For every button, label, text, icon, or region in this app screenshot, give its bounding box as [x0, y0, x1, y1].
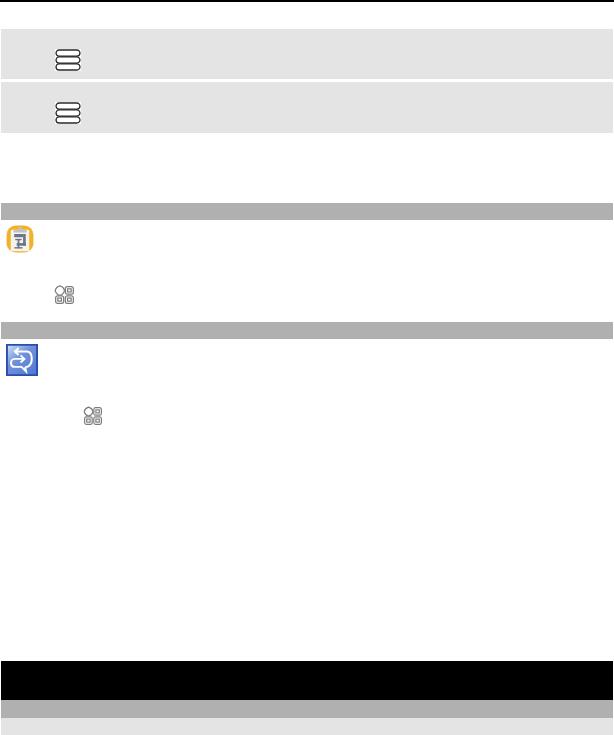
button[interactable]: Drag to reorder	[1, 82, 613, 133]
button[interactable]: Archive Manager	[6, 225, 34, 253]
button[interactable]: Drag to reorder	[1, 29, 613, 79]
button[interactable]: Messages	[6, 344, 38, 376]
button[interactable]: Application	[84, 407, 102, 425]
other: Drag to reorder	[55, 102, 81, 124]
other: Drag to reorder	[55, 49, 81, 71]
button[interactable]: Application	[55, 286, 74, 304]
